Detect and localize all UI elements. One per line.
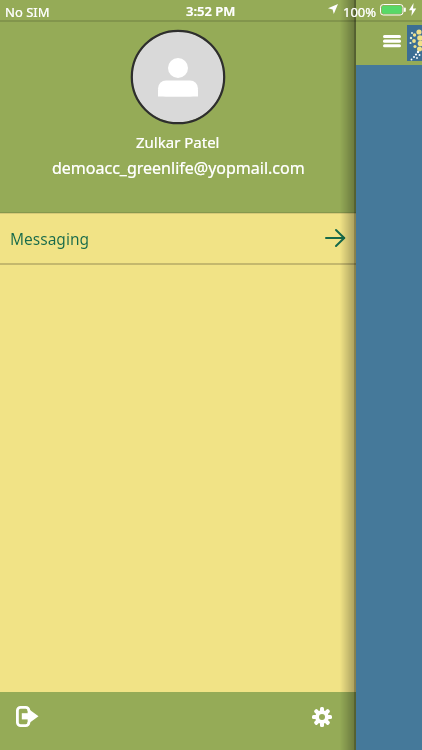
staticText: 3:52 PM [186, 2, 236, 20]
staticText: Messaging [10, 228, 89, 249]
button[interactable] [377, 30, 407, 54]
staticText: demoacc_greenlife@yopmail.com [52, 157, 305, 179]
staticText: 100% [343, 3, 377, 21]
button[interactable] [8, 700, 46, 736]
button[interactable] [131, 30, 225, 124]
staticText: Zulkar Patel [136, 132, 220, 152]
button[interactable] [304, 699, 340, 735]
button[interactable]: Messaging [0, 213, 356, 263]
staticText: No SIM [5, 3, 50, 21]
